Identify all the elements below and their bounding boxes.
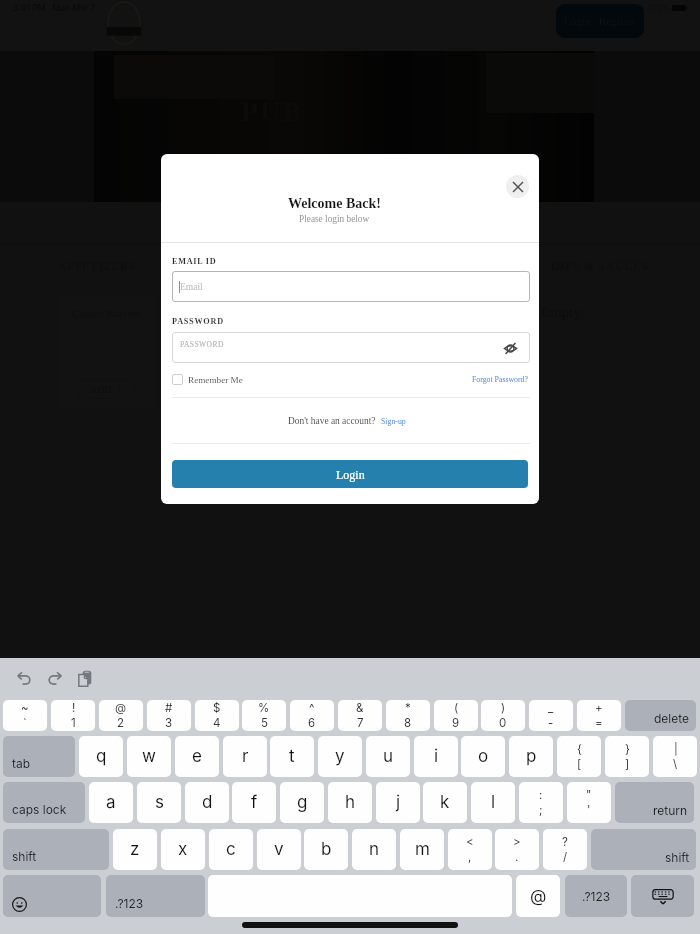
button[interactable]: Remember Me — [172, 374, 243, 385]
button[interactable]: v — [257, 829, 301, 870]
button[interactable]: Undo — [11, 665, 37, 691]
staticText: _ — [548, 701, 554, 715]
button[interactable]: : — [519, 782, 563, 823]
staticText: delete — [654, 711, 690, 726]
button[interactable]: tab — [3, 736, 75, 777]
staticText: shift — [665, 850, 690, 865]
button[interactable]: Home — [282, 214, 337, 229]
button[interactable]: b — [304, 829, 348, 870]
button[interactable]: delete — [625, 700, 696, 731]
button[interactable]: MAINS — [213, 260, 256, 273]
button[interactable]: l — [471, 782, 515, 823]
button[interactable]: m — [400, 829, 444, 870]
button[interactable]: h — [328, 782, 372, 823]
staticText: caps lock — [12, 802, 67, 817]
button[interactable]: z — [113, 829, 157, 870]
button[interactable]: | — [653, 736, 697, 777]
button[interactable]: { — [557, 736, 601, 777]
button[interactable]: shift — [591, 829, 696, 870]
button[interactable]: caps lock — [3, 782, 85, 823]
button[interactable]: u — [366, 736, 410, 777]
button[interactable]: @ — [99, 700, 143, 731]
button[interactable]: Login — [172, 460, 528, 488]
button[interactable]: .?123 — [106, 875, 205, 917]
button[interactable]: ! — [51, 700, 95, 731]
button[interactable]: } — [605, 736, 649, 777]
staticText: # — [165, 701, 173, 715]
button[interactable]: < — [448, 829, 492, 870]
staticText: Home — [304, 214, 337, 229]
button[interactable]: s — [137, 782, 181, 823]
button[interactable]: r — [223, 736, 267, 777]
button[interactable]: ) — [481, 700, 525, 731]
button[interactable]: d — [185, 782, 229, 823]
button[interactable]: shift — [3, 829, 109, 870]
button[interactable]: ~ — [3, 700, 47, 731]
button[interactable]: .?123 — [565, 875, 627, 917]
button[interactable]: Redo — [42, 665, 68, 691]
button[interactable]: g — [280, 782, 324, 823]
button[interactable]: ? — [543, 829, 587, 870]
staticText: m — [415, 839, 430, 860]
staticText: 9 — [452, 716, 460, 730]
staticText: EMAIL ID — [172, 257, 217, 266]
staticText: PASSWORD — [180, 340, 224, 348]
button[interactable]: y — [318, 736, 362, 777]
button[interactable]: x — [161, 829, 205, 870]
staticText: n — [369, 839, 380, 860]
button[interactable]: * — [386, 700, 430, 731]
staticText: shift — [12, 849, 37, 864]
button[interactable]: Show password — [501, 339, 519, 357]
staticText: < — [466, 835, 474, 849]
button[interactable]: > — [495, 829, 539, 870]
staticText: + — [595, 701, 603, 715]
staticText: h — [345, 792, 356, 813]
staticText: Please login below — [299, 214, 370, 224]
button[interactable]: q — [79, 736, 123, 777]
button[interactable] — [3, 875, 101, 917]
button[interactable]: + — [577, 700, 621, 731]
button[interactable]: w — [127, 736, 171, 777]
button[interactable]: " — [567, 782, 611, 823]
button[interactable]: t — [270, 736, 314, 777]
button[interactable]: % — [242, 700, 286, 731]
button[interactable]: _ — [529, 700, 573, 731]
button[interactable]: @ — [516, 875, 560, 917]
button[interactable]: k — [423, 782, 467, 823]
staticText: s — [155, 792, 164, 813]
button[interactable]: PASSWORD — [172, 332, 530, 363]
staticText: e — [192, 746, 202, 767]
button[interactable]: Forgot Password? — [472, 375, 528, 384]
staticText: Welcome Back! — [288, 196, 381, 212]
button[interactable]: & — [338, 700, 382, 731]
button[interactable]: # — [147, 700, 191, 731]
button[interactable]: o — [461, 736, 505, 777]
button[interactable]: Sign-up — [381, 417, 406, 426]
staticText: z — [130, 839, 140, 860]
button[interactable]: j — [376, 782, 420, 823]
button[interactable]: ^ — [290, 700, 334, 731]
button[interactable]: $ — [195, 700, 239, 731]
button[interactable]: a — [89, 782, 133, 823]
button[interactable]: f — [232, 782, 276, 823]
staticText: ? — [562, 835, 568, 849]
button[interactable]: n — [352, 829, 396, 870]
button[interactable]: Paste — [72, 665, 98, 691]
staticText: % — [258, 701, 270, 715]
button[interactable]: e — [175, 736, 219, 777]
button[interactable]: c — [209, 829, 253, 870]
button[interactable] — [631, 875, 694, 917]
button[interactable]: Email — [172, 271, 530, 302]
button[interactable]: return — [615, 782, 694, 823]
button[interactable]: i — [414, 736, 458, 777]
button[interactable]: ( — [434, 700, 478, 731]
button[interactable]: p — [509, 736, 553, 777]
button[interactable]: Close — [506, 175, 529, 198]
